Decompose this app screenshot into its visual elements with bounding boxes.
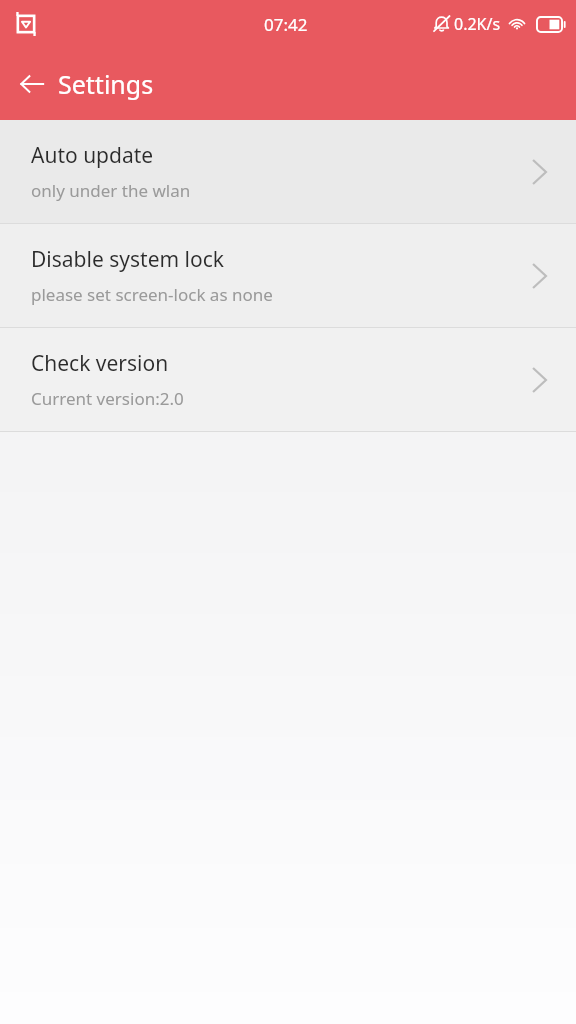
staticText: 0.2K/s [454,13,501,35]
staticText: Current version:2.0 [31,387,184,410]
staticText: only under the wlan [31,179,191,202]
staticText: Auto update [31,141,154,170]
staticText: Check version [31,349,169,378]
staticText: 07:42 [264,13,308,36]
staticText: please set screen-lock as none [31,283,273,306]
button[interactable]: Back [10,62,54,106]
staticText: Settings [58,67,154,101]
button[interactable]: Auto update [0,120,576,223]
button[interactable]: Disable system lock [0,224,576,327]
staticText: Disable system lock [31,245,224,274]
button[interactable]: Check version [0,328,576,431]
